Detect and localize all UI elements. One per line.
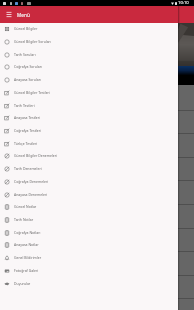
button[interactable]: Genel Bildirimler (0, 251, 178, 264)
button[interactable]: Tarih Testleri (0, 99, 178, 112)
button[interactable]: Menu (3, 9, 14, 20)
staticText: Coğrafya Notları (14, 230, 41, 235)
staticText: Genel Bildirimler (14, 255, 42, 260)
staticText: Fotoğraf Galeri (14, 268, 39, 273)
staticText: Tarih Testleri (14, 103, 35, 108)
staticText: Coğrafya Denemeleri (14, 179, 49, 184)
staticText: Güncel Bilgiler (14, 26, 38, 31)
staticText: Coğrafya Testleri (14, 128, 42, 133)
button[interactable]: Anayasa Denemeleri (0, 188, 178, 201)
staticText: Tarih Denemeleri (14, 166, 42, 171)
staticText: Anayasa Notlar (14, 242, 39, 247)
button[interactable]: Güncel Bilgiler Denemeleri (0, 149, 178, 162)
staticText: 10:10 (178, 0, 189, 6)
staticText: Anayasa Soruları (14, 77, 42, 82)
staticText: Menü (17, 12, 30, 18)
staticText: Duyurular (14, 281, 31, 286)
staticText: Tarih Soruları (14, 52, 36, 57)
button[interactable]: Coğrafya Soruları (0, 60, 178, 73)
button[interactable]: Fotoğraf Galeri (0, 264, 178, 277)
button[interactable]: Güncel Notlar (0, 200, 178, 213)
button[interactable]: Güncel Bilgiler (0, 22, 178, 35)
staticText: Güncel Bilgiler Denemeleri (14, 153, 58, 158)
button[interactable]: Anayasa Testleri (0, 111, 178, 124)
staticText: Anayasa Testleri (14, 115, 41, 120)
button[interactable]: Tarih Notlar (0, 213, 178, 226)
button[interactable]: Coğrafya Denemeleri (0, 175, 178, 188)
button[interactable]: Türkçe Testleri (0, 137, 178, 150)
button[interactable]: Tarih Soruları (0, 48, 178, 61)
button[interactable]: Güncel Bilgiler Soruları (0, 35, 178, 48)
button[interactable]: Anayasa Soruları (0, 73, 178, 86)
staticText: Tarih Notlar (14, 217, 34, 222)
button[interactable]: Tarih Denemeleri (0, 162, 178, 175)
staticText: Coğrafya Soruları (14, 64, 43, 69)
staticText: Güncel Notlar (14, 204, 37, 209)
button[interactable]: Coğrafya Testleri (0, 124, 178, 137)
staticText: Güncel Bilgiler Soruları (14, 39, 51, 44)
button[interactable]: Duyurular (0, 277, 178, 290)
button[interactable]: Güncel Bilgiler Testleri (0, 86, 178, 99)
staticText: Anayasa Denemeleri (14, 192, 48, 197)
button[interactable]: Anayasa Notlar (0, 238, 178, 251)
staticText: Türkçe Testleri (14, 141, 38, 146)
staticText: Güncel Bilgiler Testleri (14, 90, 50, 95)
button[interactable]: Coğrafya Notları (0, 226, 178, 239)
